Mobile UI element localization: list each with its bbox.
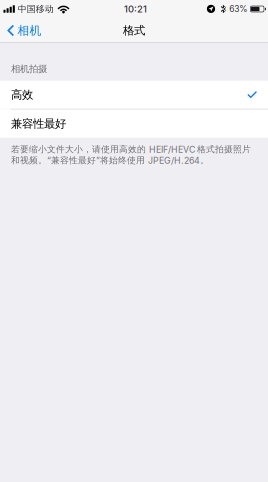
button[interactable]: 兼容性最好 bbox=[0, 110, 268, 138]
staticText: 高效 bbox=[11, 88, 33, 102]
staticText: 63% bbox=[229, 4, 247, 14]
button[interactable]: 高效 bbox=[0, 81, 268, 109]
staticText: 相机 bbox=[17, 23, 41, 38]
staticText: 中国移动 bbox=[18, 3, 54, 15]
staticText: 若要缩小文件大小，请使用高效的 HEIF/HEVC 格式拍摄照片和视频。“兼容性… bbox=[11, 144, 251, 166]
staticText: 兼容性最好 bbox=[11, 117, 66, 131]
staticText: 格式 bbox=[123, 23, 145, 38]
staticText: 相机拍摄 bbox=[11, 63, 47, 75]
button[interactable]: 相机 bbox=[0, 18, 50, 43]
staticText: 10:21 bbox=[124, 3, 147, 15]
